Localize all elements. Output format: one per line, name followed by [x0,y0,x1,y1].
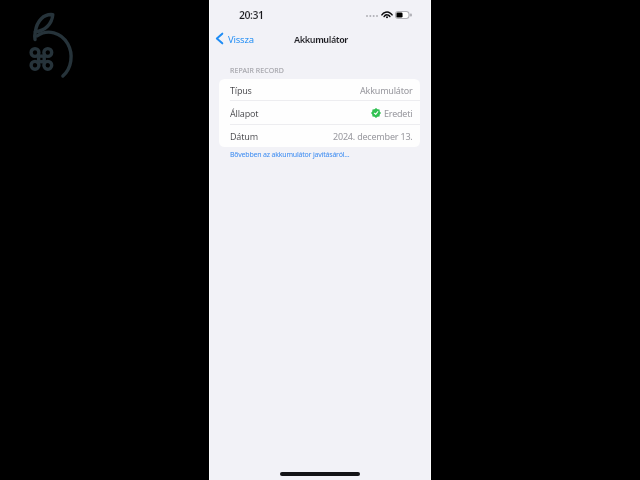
staticText: Állapot [230,107,259,119]
button[interactable]: Dátum [219,125,420,147]
other: Logo [28,13,72,77]
staticText: Akkumulátor [360,84,413,96]
button[interactable]: Állapot [219,101,420,125]
staticText: REPAIR RECORD [230,66,284,76]
staticText: 20:31 [239,8,264,22]
button[interactable]: Bővebben az akkumulátor javításáról... [230,150,350,160]
staticText: Akkumulátor [294,33,348,45]
button[interactable]: Típus [219,79,420,101]
staticText: Eredeti [384,107,413,119]
staticText: Vissza [228,33,254,46]
staticText: 2024. december 13. [333,130,413,142]
staticText: Dátum [230,130,258,142]
button[interactable]: Vissza [212,30,260,47]
staticText: Típus [230,84,252,96]
